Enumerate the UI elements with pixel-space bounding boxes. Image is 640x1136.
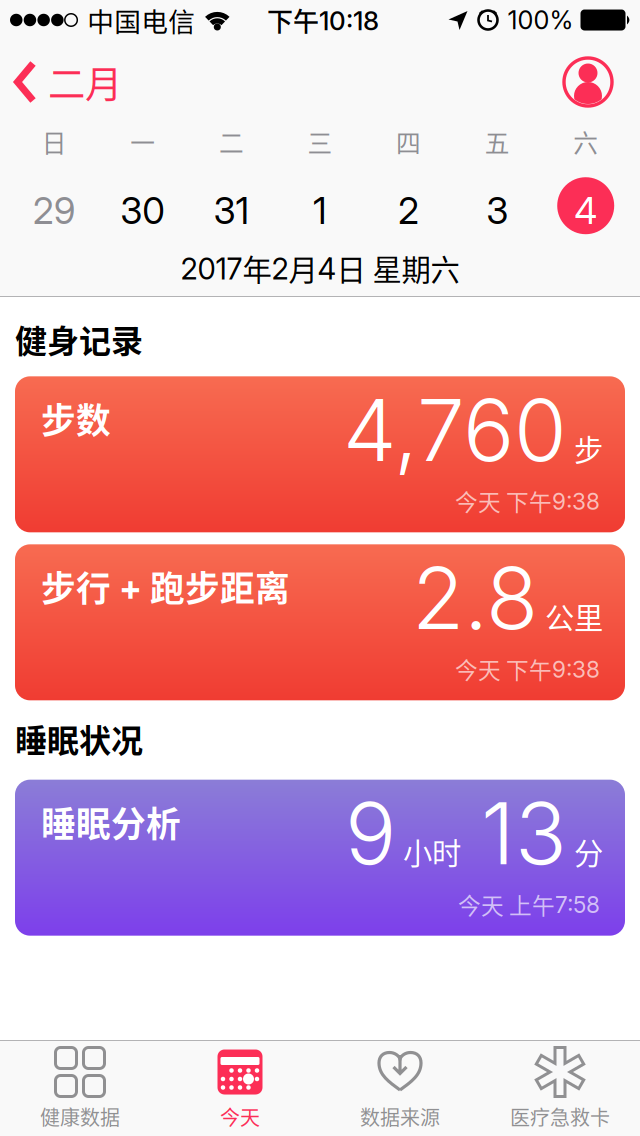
staticText: 100% [507,5,573,35]
staticText: 30 [120,188,165,233]
button[interactable]: 30 [99,181,187,241]
button[interactable]: 1 [276,181,364,241]
staticText: 睡眠分析 [41,797,181,847]
staticText: 一 [130,124,155,160]
button[interactable]: 数据来源 [320,1041,480,1136]
staticText: 9 [345,782,396,885]
staticText: 二 [219,124,244,160]
button[interactable]: 31 [187,181,276,241]
staticText: 31 [213,188,249,233]
button[interactable]: 医疗急救卡 [480,1041,640,1136]
button[interactable]: 步行 + 跑步距离 [0,544,640,700]
button[interactable]: 今天 [160,1041,320,1136]
staticText: 二月 [48,55,122,109]
button[interactable]: 健康资料 [564,58,640,106]
staticText: 三 [307,124,332,160]
staticText: 1 [313,188,327,233]
staticText: 日 [42,124,67,160]
staticText: 数据来源 [360,1102,440,1131]
staticText: 今天 [220,1102,260,1131]
staticText: 2 [398,188,419,233]
staticText: 步数 [41,393,111,443]
staticText: 中国电信 [87,1,195,39]
button[interactable]: 步数 [0,376,640,532]
staticText: 下午10:18 [267,1,379,39]
staticText: 步 [574,427,603,469]
staticText: 分 [574,830,603,873]
staticText: 公里 [545,595,603,637]
staticText: 四 [396,124,421,160]
staticText: 睡眠状况 [15,715,143,762]
button[interactable]: 4 [541,181,630,241]
button[interactable]: 2 [364,181,453,241]
button[interactable]: 3 [453,181,541,241]
staticText: 13 [481,782,567,885]
staticText: 2.8 [412,546,538,649]
staticText: 步行 + 跑步距离 [41,561,290,611]
staticText: 今天 下午9:38 [455,652,600,685]
staticText: 五 [485,124,510,160]
staticText: 六 [573,124,598,160]
staticText: 4,760 [343,378,567,481]
button[interactable]: 29 [10,181,99,241]
staticText: 3 [486,188,508,233]
staticText: 4 [574,188,597,233]
staticText: 今天 下午9:38 [455,484,600,517]
staticText: 医疗急救卡 [510,1102,610,1131]
staticText: 健身记录 [15,316,143,362]
staticText: 健康数据 [40,1102,120,1131]
staticText: 2017年2月4日 星期六 [180,247,459,289]
button[interactable]: 二月 [0,55,122,109]
button[interactable]: 健康数据 [0,1041,160,1136]
staticText: 小时 [403,830,461,873]
button[interactable]: 睡眠分析 [0,780,640,936]
staticText: 29 [33,188,76,233]
staticText: 今天 上午7:58 [458,888,600,921]
